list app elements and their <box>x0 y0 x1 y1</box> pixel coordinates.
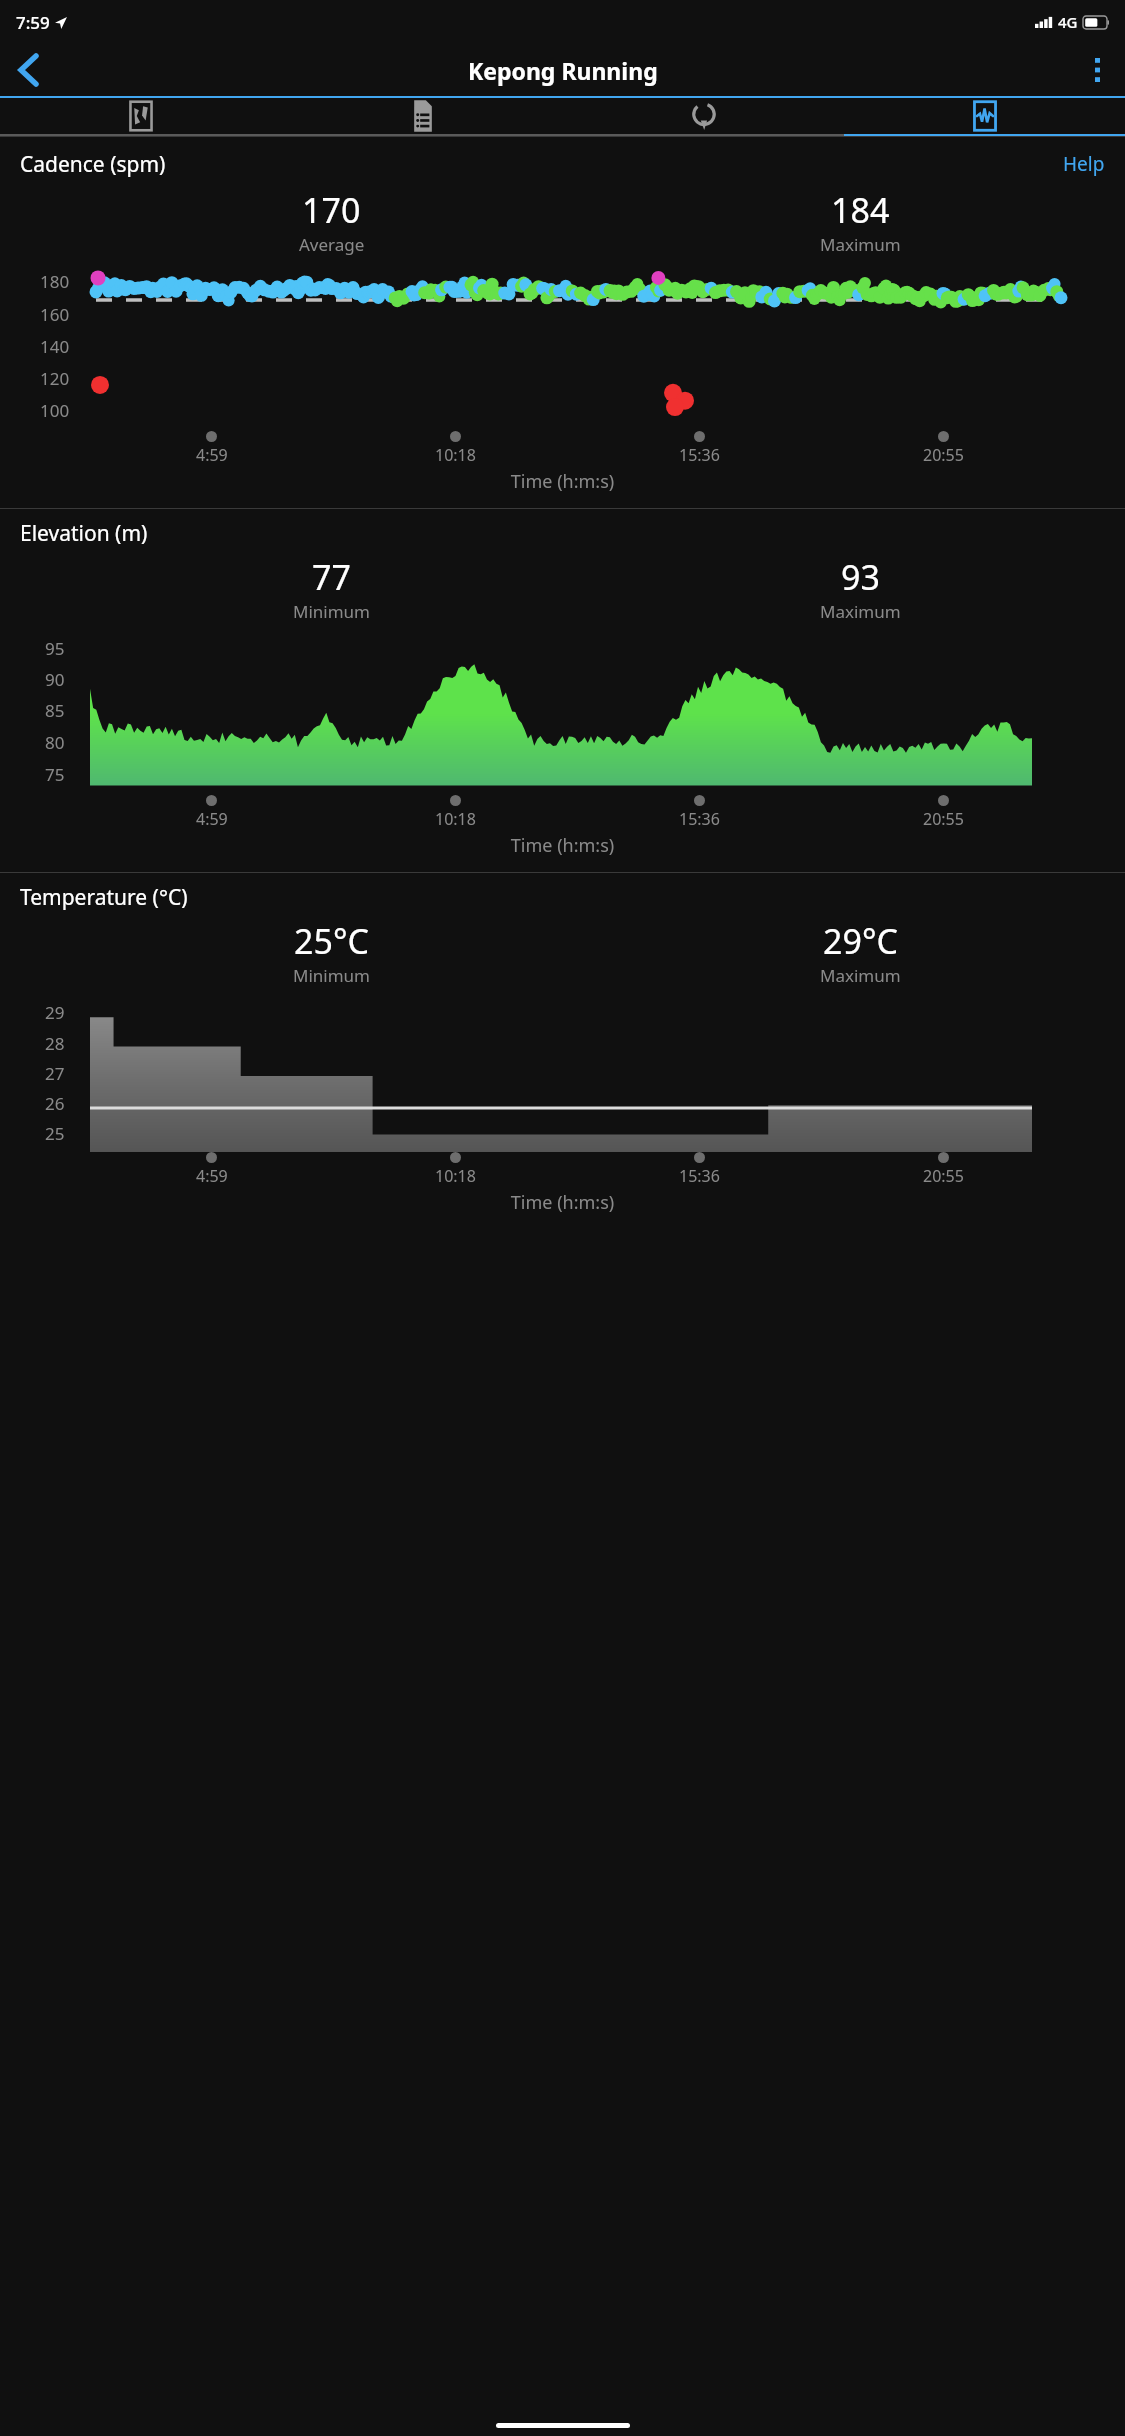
staticText: 4:59 <box>196 444 228 466</box>
staticText: 120 <box>40 367 70 390</box>
staticText: 27 <box>45 1062 65 1085</box>
staticText: 20:55 <box>923 444 964 466</box>
button[interactable]: Charts <box>844 98 1125 134</box>
staticText: Maximum <box>820 233 901 256</box>
staticText: 28 <box>45 1032 65 1055</box>
staticText: 10:18 <box>435 1165 476 1187</box>
button[interactable]: Details <box>282 98 563 134</box>
staticText: Maximum <box>820 600 901 623</box>
staticText: Maximum <box>820 964 901 987</box>
staticText: 4:59 <box>196 1165 228 1187</box>
staticText: 95 <box>45 637 65 660</box>
staticText: Cadence (spm) <box>20 150 166 179</box>
staticText: Temperature (°C) <box>20 883 188 912</box>
staticText: 7:59 <box>16 11 50 34</box>
staticText: 4G <box>1058 12 1078 32</box>
staticText: 25°C <box>294 918 369 964</box>
staticText: 75 <box>45 763 65 786</box>
staticText: 180 <box>40 270 70 293</box>
staticText: 170 <box>302 187 361 233</box>
staticText: 20:55 <box>923 1165 964 1187</box>
staticText: 29°C <box>823 918 898 964</box>
staticText: 80 <box>45 731 65 754</box>
staticText: Help <box>1063 151 1105 177</box>
staticText: Time (h:m:s) <box>0 469 1125 494</box>
staticText: Time (h:m:s) <box>0 1190 1125 1215</box>
staticText: Time (h:m:s) <box>0 833 1125 858</box>
staticText: 184 <box>831 187 890 233</box>
staticText: 25 <box>45 1122 65 1145</box>
staticText: 93 <box>841 554 880 600</box>
button[interactable]: Laps <box>563 98 844 134</box>
staticText: 15:36 <box>679 1165 720 1187</box>
staticText: 20:55 <box>923 808 964 830</box>
staticText: Minimum <box>293 600 370 623</box>
staticText: 160 <box>40 303 70 326</box>
staticText: Kepong Running <box>468 55 658 86</box>
staticText: 15:36 <box>679 808 720 830</box>
staticText: 10:18 <box>435 808 476 830</box>
staticText: Elevation (m) <box>20 519 148 548</box>
staticText: Minimum <box>293 964 370 987</box>
staticText: 100 <box>40 399 70 422</box>
staticText: 85 <box>45 699 65 722</box>
button[interactable]: Back <box>0 44 56 96</box>
staticText: Average <box>299 233 365 256</box>
staticText: 90 <box>45 668 65 691</box>
staticText: 29 <box>45 1001 65 1024</box>
button[interactable]: Help <box>1059 147 1109 181</box>
button[interactable]: Map <box>0 98 282 134</box>
staticText: 26 <box>45 1092 65 1115</box>
staticText: 4:59 <box>196 808 228 830</box>
staticText: 77 <box>312 554 351 600</box>
staticText: 10:18 <box>435 444 476 466</box>
staticText: 140 <box>40 335 70 358</box>
staticText: 15:36 <box>679 444 720 466</box>
button[interactable]: More options <box>1069 44 1125 96</box>
